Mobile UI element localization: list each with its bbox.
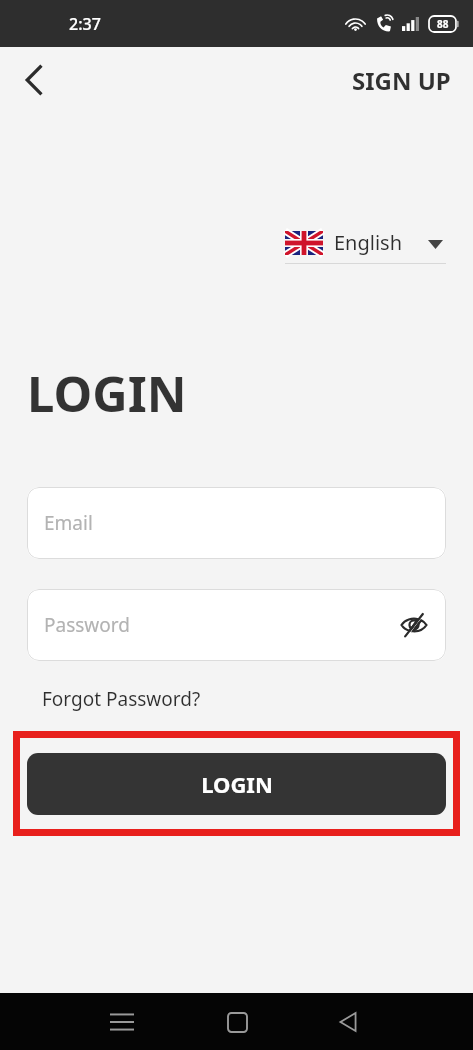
staticText: 2:37 [69, 13, 101, 35]
button[interactable]: English [285, 229, 446, 264]
button[interactable]: Show password [392, 603, 436, 647]
staticText: SIGN UP [352, 64, 451, 97]
button[interactable]: Back [324, 998, 372, 1046]
button[interactable]: Password [27, 589, 446, 661]
staticText: LOGIN [201, 769, 273, 799]
button[interactable]: LOGIN [27, 753, 446, 815]
button[interactable]: Back [10, 56, 58, 104]
button[interactable]: Recent apps [98, 998, 146, 1046]
staticText: Password [44, 612, 130, 638]
button[interactable]: Forgot Password? [27, 682, 216, 716]
button[interactable]: Home [213, 998, 261, 1046]
button[interactable]: SIGN UP [330, 54, 473, 107]
staticText: Forgot Password? [42, 686, 201, 712]
staticText: English [334, 229, 403, 256]
staticText: LOGIN [27, 360, 187, 427]
staticText: Email [44, 510, 93, 536]
button[interactable]: Email [27, 487, 446, 559]
staticText: 88 [437, 17, 449, 31]
